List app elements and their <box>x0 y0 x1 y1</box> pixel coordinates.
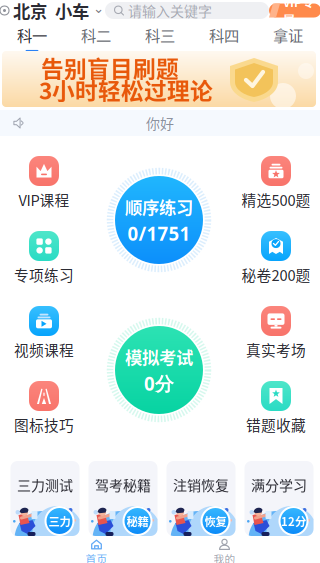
staticText: 0/1751 <box>127 221 190 246</box>
staticText: 0分 <box>144 371 174 396</box>
button[interactable]: 真实考场 <box>232 306 320 356</box>
staticText: 请输入关键字 <box>128 0 212 21</box>
button[interactable]: 图标技巧 <box>0 381 88 431</box>
staticText: 错题收藏 <box>246 414 306 435</box>
staticText: 真实考场 <box>246 339 306 360</box>
staticText: 秘籍 <box>126 513 148 529</box>
button[interactable]: 精选500题 <box>232 156 320 206</box>
staticText: 3小时轻松过理论 <box>39 73 213 106</box>
button[interactable]: 科二 <box>64 24 128 52</box>
staticText: 三力测试 <box>17 474 73 495</box>
button[interactable]: 首页 <box>0 535 160 563</box>
staticText: 恢复 <box>204 513 226 529</box>
button[interactable]: 恢复 <box>166 461 235 536</box>
staticText: 首页 <box>85 551 107 563</box>
button[interactable]: 北京 小车 <box>0 0 104 23</box>
staticText: 我的 <box>213 551 235 563</box>
button[interactable]: 12分 <box>244 461 313 536</box>
staticText: 北京 小车 <box>13 0 89 23</box>
staticText: 专项练习 <box>14 264 74 285</box>
staticText: 拿证 <box>273 24 303 46</box>
staticText: 科四 <box>209 24 239 46</box>
button[interactable]: 错题收藏 <box>232 381 320 431</box>
button[interactable]: 秘卷200题 <box>232 231 320 281</box>
staticText: 秘卷200题 <box>241 264 310 285</box>
staticText: 视频课程 <box>14 339 74 360</box>
button[interactable]: VIP课程 <box>0 156 88 206</box>
button[interactable]: 秘籍 <box>88 461 157 536</box>
button[interactable]: 请输入关键字 <box>105 2 269 19</box>
staticText: 科三 <box>145 24 175 46</box>
button[interactable]: 科一 <box>0 24 64 52</box>
staticText: 顺序练习 <box>125 194 193 219</box>
staticText: 注销恢复 <box>173 474 229 495</box>
staticText: 你好 <box>146 113 174 133</box>
staticText: VIP专属 <box>283 0 314 28</box>
staticText: 满分学习 <box>251 474 307 495</box>
staticText: 告别盲目刷题 <box>41 51 179 84</box>
button[interactable]: 顺序练习 <box>105 166 213 274</box>
button[interactable]: 科三 <box>128 24 192 52</box>
staticText: 模拟考试 <box>125 344 193 369</box>
staticText: 科二 <box>81 24 111 46</box>
button[interactable]: 拿证 <box>256 24 320 52</box>
button[interactable]: 专项练习 <box>0 231 88 281</box>
button[interactable]: VIP专属 <box>269 3 320 17</box>
staticText: 科一 <box>17 24 47 46</box>
button[interactable]: 视频课程 <box>0 306 88 356</box>
staticText: ⌄ <box>93 1 104 16</box>
staticText: 图标技巧 <box>14 414 74 435</box>
button[interactable]: 模拟考试 <box>105 316 213 424</box>
button[interactable]: 三力 <box>10 461 79 536</box>
staticText: 精选500题 <box>241 189 310 210</box>
button[interactable]: 科四 <box>192 24 256 52</box>
staticText: VIP课程 <box>18 189 69 210</box>
button[interactable]: 我的 <box>160 535 320 563</box>
staticText: 12分 <box>281 513 306 529</box>
staticText: 三力 <box>48 513 70 529</box>
staticText: 驾考秘籍 <box>95 474 151 495</box>
